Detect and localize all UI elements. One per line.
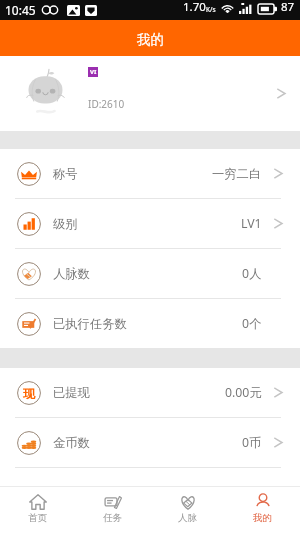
staticText: 人脉 xyxy=(178,512,197,524)
button[interactable]: 现 xyxy=(0,368,300,417)
staticText: VI xyxy=(90,68,97,76)
staticText: 一穷二白 xyxy=(212,166,262,181)
staticText: 10:45 xyxy=(5,2,36,18)
staticText: 1.70 xyxy=(183,0,206,15)
button[interactable]: 金币数 xyxy=(0,418,300,467)
staticText: 任务 xyxy=(103,512,122,524)
button[interactable]: 人脉 xyxy=(150,487,225,533)
staticText: LV1 xyxy=(241,215,262,232)
button[interactable]: VI xyxy=(0,56,300,131)
staticText: 我的 xyxy=(137,31,164,48)
button[interactable]: 首页 xyxy=(0,487,75,533)
staticText: 称号 xyxy=(53,166,78,181)
staticText: 金币数 xyxy=(53,435,90,450)
staticText: 我的 xyxy=(253,512,272,524)
staticText: ID:2610 xyxy=(88,97,125,111)
staticText: 0币 xyxy=(242,434,262,451)
staticText: 现 xyxy=(23,386,35,401)
staticText: 0人 xyxy=(242,265,262,282)
staticText: 人脉数 xyxy=(53,266,90,281)
button[interactable]: 级别 xyxy=(0,199,300,248)
staticText: 级别 xyxy=(53,216,78,231)
staticText: K/s xyxy=(206,5,216,14)
button[interactable]: 已执行任务数 xyxy=(0,299,300,348)
staticText: 首页 xyxy=(28,512,47,524)
staticText: 0.00元 xyxy=(225,384,262,401)
staticText: 已执行任务数 xyxy=(53,316,127,331)
button[interactable]: 称号 xyxy=(0,149,300,198)
button[interactable]: 我的 xyxy=(225,487,300,533)
staticText: 0个 xyxy=(242,315,262,332)
button[interactable]: 任务 xyxy=(75,487,150,533)
staticText: 已提现 xyxy=(53,385,90,400)
button[interactable]: 人脉数 xyxy=(0,249,300,298)
staticText: 87 xyxy=(281,0,295,15)
